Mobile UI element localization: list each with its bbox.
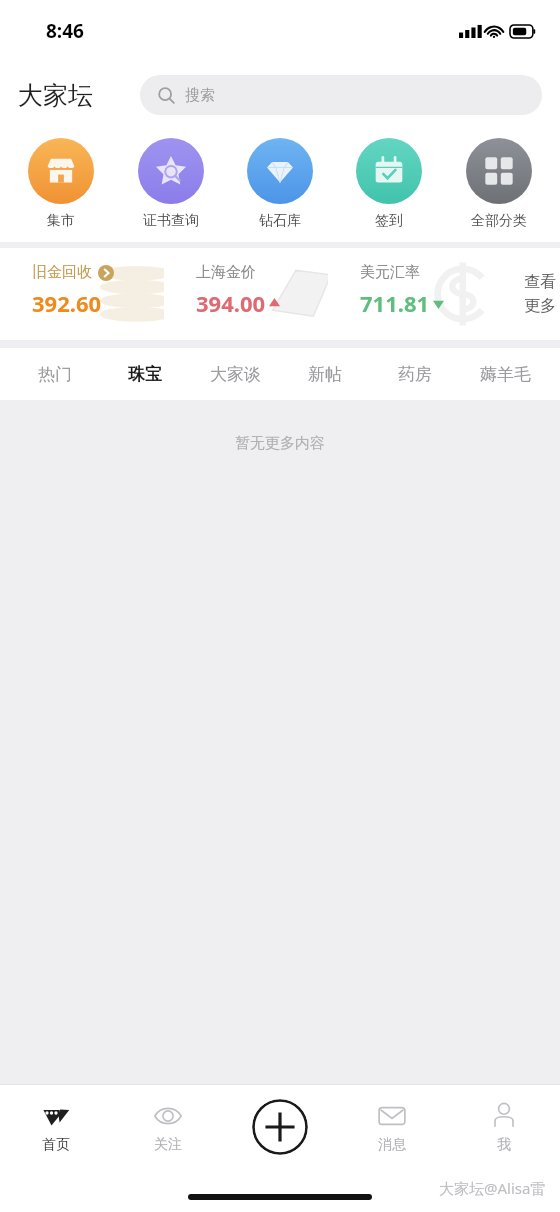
button[interactable]: 钻石库 [232, 136, 328, 232]
button[interactable]: 大家谈 [190, 348, 280, 400]
staticText: 新帖 [308, 364, 342, 385]
staticText: 8:46 [46, 18, 84, 44]
staticText: 薅羊毛 [480, 364, 531, 385]
button[interactable]: 薅羊毛 [460, 348, 550, 400]
button[interactable]: 美元汇率 [346, 257, 492, 331]
staticText: 珠宝 [128, 364, 162, 385]
staticText: 集市 [47, 212, 75, 230]
staticText: 搜索 [185, 86, 215, 105]
staticText: 上海金价 [196, 263, 256, 282]
staticText: 更多 [524, 296, 556, 316]
staticText: 392.60 [32, 288, 102, 318]
button[interactable]: 关注 [112, 1084, 224, 1170]
staticText: 查看 [524, 272, 556, 292]
staticText: 我 [497, 1136, 511, 1154]
staticText: 大家坛 [18, 80, 93, 111]
button[interactable]: 上海金价 [182, 257, 328, 331]
staticText: 394.00 [196, 288, 266, 318]
button[interactable]: 新帖 [280, 348, 370, 400]
button[interactable]: 全部分类 [451, 136, 547, 232]
staticText: 关注 [154, 1136, 182, 1154]
staticText: 大家谈 [210, 364, 261, 385]
staticText: 钻石库 [259, 212, 301, 230]
staticText: 首页 [42, 1136, 70, 1154]
button[interactable]: 大家坛 [18, 75, 128, 115]
button[interactable]: 证书查询 [123, 136, 219, 232]
button[interactable]: 查看 [510, 257, 560, 331]
button[interactable]: 我 [448, 1084, 560, 1170]
staticText: 消息 [378, 1136, 406, 1154]
staticText: 暂无更多内容 [235, 434, 325, 453]
staticText: 证书查询 [143, 212, 199, 230]
staticText: 711.81 [360, 288, 430, 318]
button[interactable]: 首页 [0, 1084, 112, 1170]
staticText: 签到 [375, 212, 403, 230]
button[interactable]: 珠宝 [100, 348, 190, 400]
button[interactable]: 消息 [336, 1084, 448, 1170]
button[interactable]: 热门 [10, 348, 100, 400]
button[interactable]: 旧金回收 [18, 257, 164, 331]
staticText: 热门 [38, 364, 72, 385]
button[interactable]: 集市 [13, 136, 109, 232]
staticText: 美元汇率 [360, 263, 420, 282]
staticText: 大家坛@Alisa雷 [439, 1178, 546, 1198]
button[interactable]: 药房 [370, 348, 460, 400]
staticText: 旧金回收 [32, 263, 92, 282]
staticText: 药房 [398, 364, 432, 385]
button[interactable]: 搜索 [140, 75, 542, 115]
button[interactable]: Create post [252, 1099, 308, 1155]
staticText: 全部分类 [471, 212, 527, 230]
button[interactable]: 签到 [341, 136, 437, 232]
